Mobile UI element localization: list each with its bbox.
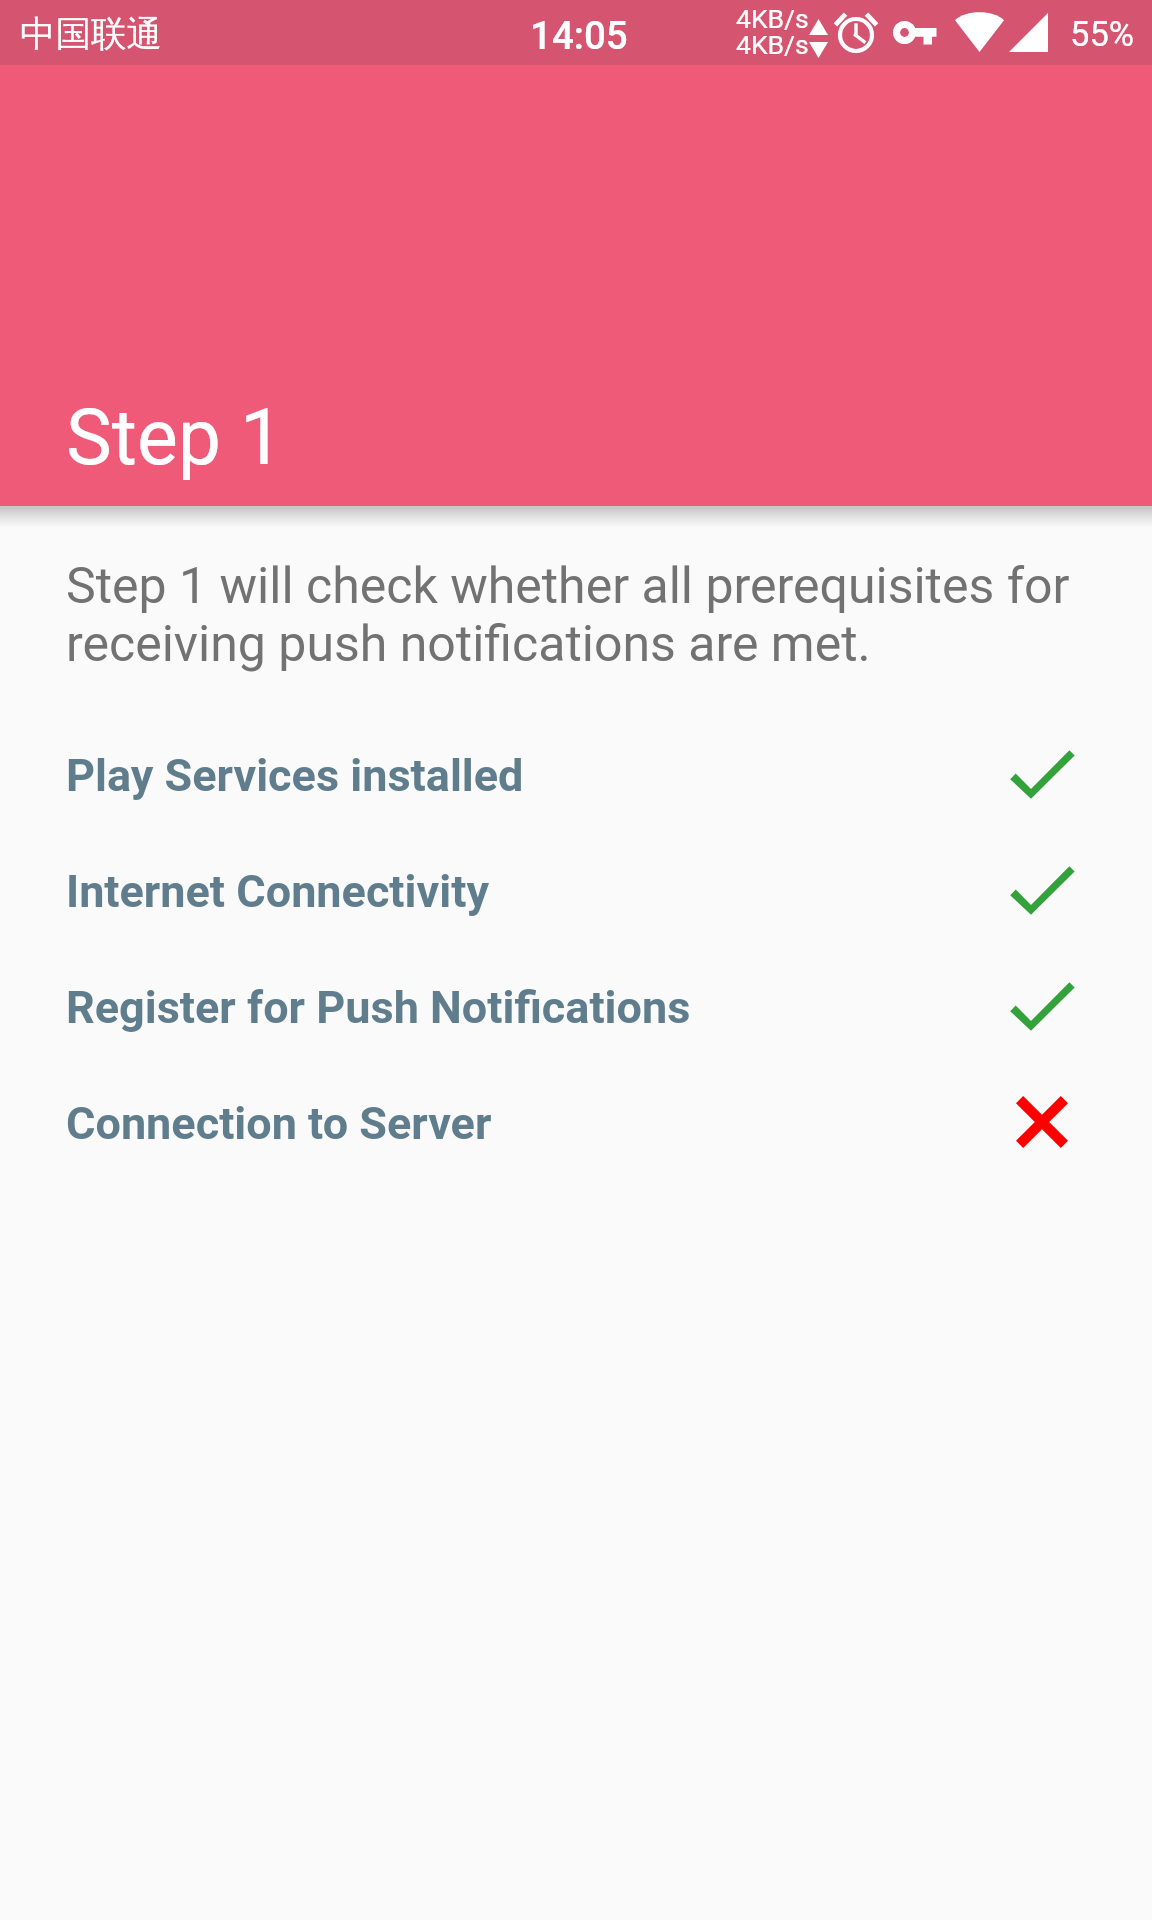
button[interactable]: Play Services installed — [0, 732, 1152, 848]
staticText: Internet Connectivity — [66, 865, 490, 918]
staticText: Step 1 — [66, 393, 284, 483]
other: Requirement not met — [1016, 1096, 1068, 1148]
other: Network traffic — [809, 19, 828, 58]
staticText: Step 1 will check whether all prerequisi… — [66, 557, 1076, 673]
button[interactable]: Register for Push Notifications — [0, 964, 1152, 1080]
staticText: Register for Push Notifications — [66, 981, 691, 1034]
staticText: 55% — [1070, 14, 1135, 54]
staticText: 中国联通 — [20, 12, 162, 57]
other: Alarm set — [832, 12, 880, 54]
staticText: 14:05 — [530, 13, 628, 58]
staticText: 4KB/s — [736, 3, 809, 34]
other: Mobile signal — [1009, 13, 1048, 52]
other: Wi-Fi signal — [955, 13, 1004, 52]
other: VPN active — [893, 20, 937, 45]
staticText: Connection to Server — [66, 1097, 492, 1150]
other: Requirement met — [1010, 982, 1075, 1031]
button[interactable]: Internet Connectivity — [0, 848, 1152, 964]
other: Requirement met — [1010, 750, 1075, 799]
staticText: Play Services installed — [66, 749, 524, 802]
button[interactable]: Connection to Server — [0, 1080, 1152, 1196]
staticText: 4KB/s — [736, 29, 809, 60]
other: Requirement met — [1010, 866, 1075, 915]
